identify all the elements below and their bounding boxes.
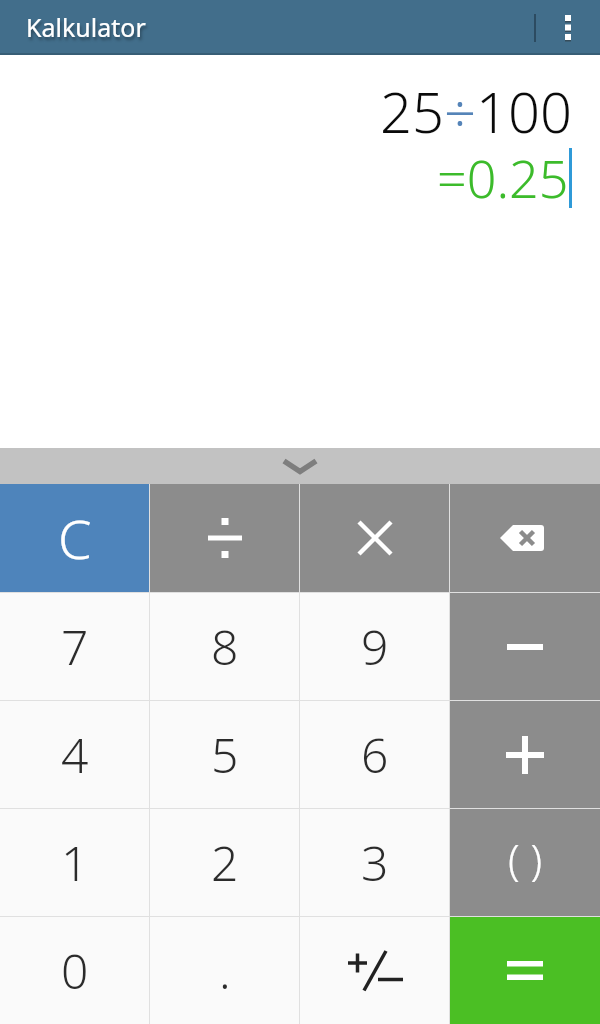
button[interactable]: ( ) — [450, 809, 600, 916]
button[interactable] — [450, 701, 600, 808]
button[interactable]: C — [0, 484, 149, 592]
staticText: 2 — [211, 830, 239, 895]
staticText: 4 — [61, 722, 89, 787]
staticText: =0.25 — [437, 142, 569, 213]
button[interactable]: 3 — [300, 809, 449, 916]
staticText: C — [58, 501, 92, 575]
button[interactable]: 0 — [0, 917, 149, 1024]
staticText: 8 — [211, 614, 239, 679]
button[interactable]: 2 — [150, 809, 299, 916]
button[interactable] — [300, 484, 449, 592]
staticText: 7 — [61, 614, 89, 679]
staticText: 1 — [61, 830, 89, 895]
button[interactable] — [150, 484, 299, 592]
button[interactable] — [300, 917, 449, 1024]
button[interactable]: 9 — [300, 593, 449, 700]
staticText: 0 — [61, 938, 89, 1003]
button[interactable] — [450, 484, 600, 592]
button[interactable]: 1 — [0, 809, 149, 916]
button[interactable]: 5 — [150, 701, 299, 808]
staticText: 25÷100 — [380, 73, 572, 149]
staticText: 9 — [361, 614, 389, 679]
button[interactable]: . — [150, 917, 299, 1024]
button[interactable] — [450, 593, 600, 700]
staticText: . — [219, 938, 231, 1003]
button[interactable] — [450, 917, 600, 1024]
button[interactable] — [544, 0, 592, 55]
staticText: ( ) — [508, 830, 543, 887]
button[interactable]: 4 — [0, 701, 149, 808]
staticText: Kalkulator — [26, 10, 146, 44]
button[interactable]: 7 — [0, 593, 149, 700]
staticText: 3 — [361, 830, 389, 895]
button[interactable]: 8 — [150, 593, 299, 700]
staticText: 5 — [211, 722, 239, 787]
button[interactable] — [0, 448, 600, 484]
button[interactable]: 6 — [300, 701, 449, 808]
staticText: 6 — [361, 722, 389, 787]
